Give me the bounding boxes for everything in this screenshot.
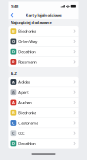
- button[interactable]: O: [8, 36, 78, 46]
- staticText: CCC: [18, 130, 25, 136]
- button[interactable]: B: [8, 108, 78, 118]
- button[interactable]: D: [8, 46, 78, 57]
- staticText: Biedronka: [18, 28, 36, 34]
- button[interactable]: A: [8, 87, 78, 97]
- staticText: Biedronka: [18, 110, 36, 115]
- staticText: O: [12, 39, 15, 44]
- button[interactable]: B: [8, 26, 78, 36]
- staticText: Rossmann: [18, 59, 36, 64]
- staticText: Adidas: [18, 79, 30, 85]
- staticText: Decathlon: [18, 49, 35, 54]
- staticText: D: [12, 141, 15, 146]
- button[interactable]: D: [8, 138, 78, 148]
- staticText: Karty lojalnościowe: [25, 12, 61, 18]
- staticText: Auchan: [18, 100, 31, 105]
- button[interactable]: C: [8, 128, 78, 138]
- staticText: A: [12, 100, 15, 105]
- button[interactable]: C: [8, 118, 78, 128]
- staticText: C: [12, 130, 15, 136]
- staticText: Najczęściej dodawane: [10, 20, 51, 25]
- staticText: D: [12, 49, 15, 54]
- staticText: Castorama: [18, 120, 38, 126]
- staticText: A: [12, 89, 15, 95]
- staticText: B: [12, 110, 15, 115]
- staticText: Decathlon: [18, 141, 35, 146]
- button[interactable]: R: [8, 57, 78, 67]
- staticText: A-Z: [10, 71, 16, 76]
- button[interactable]: A: [8, 97, 78, 107]
- staticText: A: [12, 79, 15, 85]
- staticText: R: [12, 59, 15, 64]
- staticText: 9:48: [11, 4, 18, 9]
- button[interactable]: A: [8, 77, 78, 87]
- staticText: Orlen Vitay: [18, 39, 37, 44]
- staticText: Apart: [18, 89, 28, 95]
- staticText: B: [12, 28, 15, 34]
- button[interactable]: Back: [8, 11, 17, 19]
- staticText: C: [12, 120, 15, 126]
